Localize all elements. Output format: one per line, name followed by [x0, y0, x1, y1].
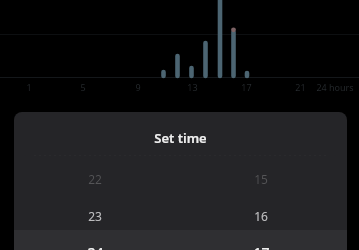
button[interactable]: 15 — [241, 171, 281, 187]
staticText: 17 — [253, 243, 270, 250]
staticText: 9 — [135, 81, 141, 93]
staticText: Set time — [154, 129, 207, 147]
button[interactable]: 17 — [241, 243, 281, 250]
staticText: 17 — [241, 81, 252, 93]
staticText: 5 — [80, 81, 86, 93]
button[interactable]: 22 — [75, 171, 115, 187]
staticText: 24 hours — [316, 81, 354, 93]
button[interactable]: 24 — [75, 243, 115, 250]
staticText: 24 — [87, 243, 104, 250]
staticText: 21 — [295, 81, 306, 93]
staticText: 15 — [254, 171, 268, 187]
staticText: 1 — [26, 81, 32, 93]
button[interactable]: 23 — [75, 208, 115, 224]
staticText: 22 — [88, 171, 102, 187]
staticText: 23 — [88, 208, 102, 224]
staticText: 16 — [254, 208, 268, 224]
button[interactable]: 16 — [241, 208, 281, 224]
staticText: 13 — [187, 81, 198, 93]
